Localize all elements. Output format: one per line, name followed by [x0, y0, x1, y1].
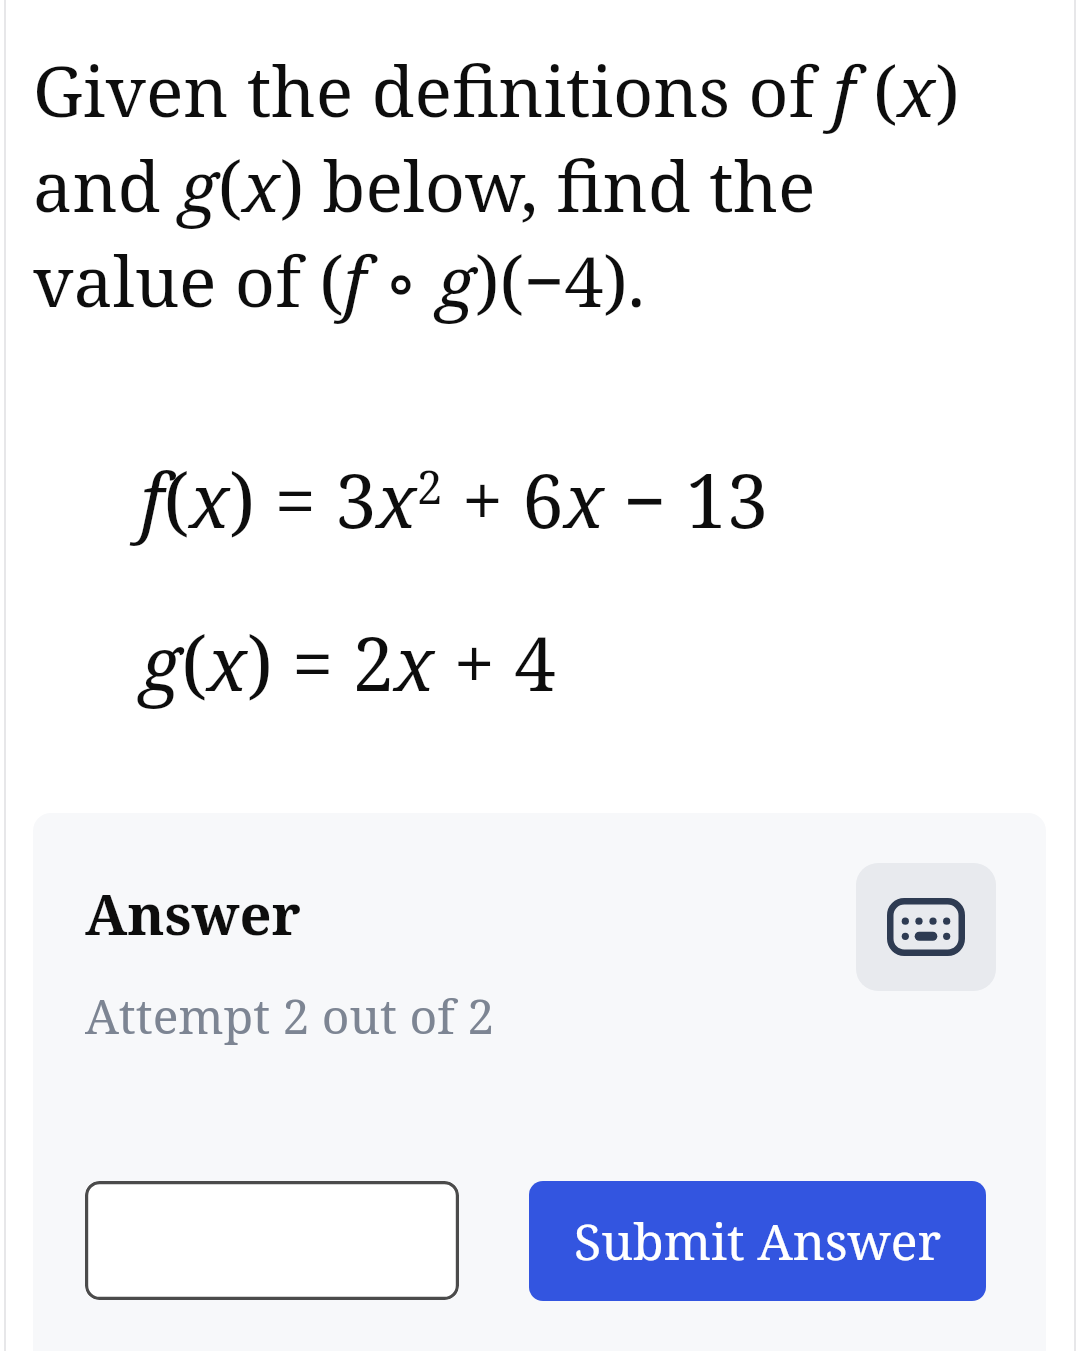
staticText: Submit Answer — [574, 1207, 941, 1275]
staticText: Attempt 2 out of 2 — [85, 983, 495, 1048]
staticText: and g(x) below, find the — [33, 137, 816, 232]
staticText: Given the definitions of f (x) — [33, 42, 960, 137]
button[interactable]: Open math keyboard — [856, 863, 996, 991]
staticText: value of (f ∘ g)(−4). — [33, 232, 646, 327]
staticText: f(x) = 3x2 + 6x − 13 — [140, 449, 769, 550]
staticText: Answer — [85, 875, 301, 951]
staticText: g(x) = 2x + 4 — [140, 612, 556, 713]
button[interactable]: Submit Answer — [529, 1181, 986, 1301]
button[interactable] — [85, 1181, 459, 1300]
